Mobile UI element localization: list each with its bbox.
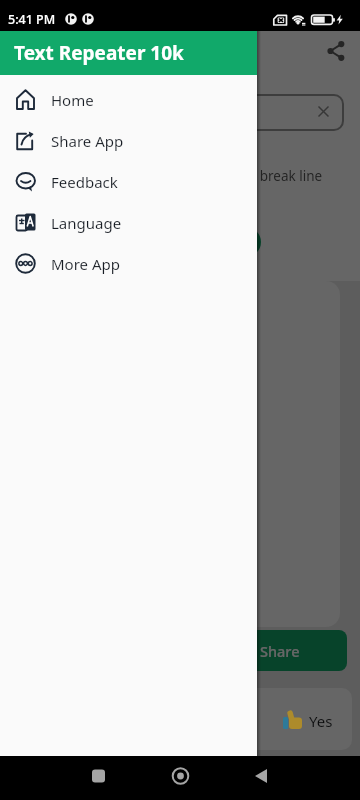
button[interactable]: More App [0, 243, 257, 284]
button[interactable]: Feedback [0, 161, 257, 202]
button[interactable]: Home [0, 79, 257, 120]
staticText: Share [260, 641, 300, 661]
button[interactable] [80, 756, 120, 800]
button[interactable]: Language [0, 202, 257, 243]
staticText: Home [51, 90, 94, 110]
button[interactable]: Share [213, 630, 347, 671]
button[interactable] [160, 756, 200, 800]
staticText: Language [51, 213, 122, 233]
staticText: Feedback [51, 172, 118, 192]
staticText: Yes [309, 711, 333, 731]
staticText: More App [51, 254, 120, 274]
button[interactable] [240, 756, 280, 800]
staticText: Add break line [231, 167, 323, 185]
staticText: Share App [51, 131, 124, 151]
button[interactable]: Share App [0, 120, 257, 161]
staticText: Text Repeater 10k [14, 40, 184, 66]
staticText: 5:41 PM [8, 11, 56, 28]
